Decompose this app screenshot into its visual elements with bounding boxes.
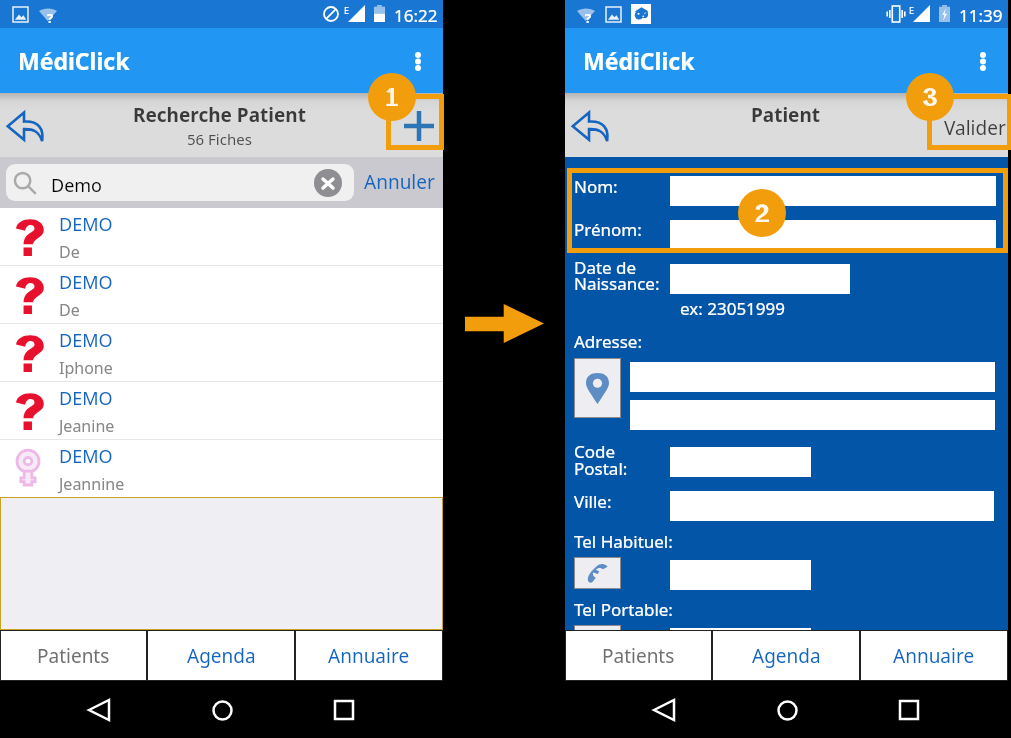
staticText: Iphone	[59, 357, 113, 379]
button[interactable]: DEMO	[0, 208, 443, 266]
button[interactable]: Patients	[1, 631, 146, 680]
button[interactable]: Annuaire	[296, 631, 442, 680]
staticText: Annuler	[364, 169, 435, 195]
staticText: Date de	[574, 256, 637, 279]
staticText: Tel Habituel:	[574, 530, 673, 553]
staticText: DEMO	[59, 444, 113, 469]
staticText: Agenda	[752, 643, 821, 669]
staticText: Demo	[51, 173, 103, 198]
staticText: DEMO	[59, 328, 113, 353]
button[interactable]: DEMO	[0, 382, 443, 440]
staticText: Naissance:	[574, 272, 660, 295]
staticText: 56 Fiches	[187, 129, 252, 149]
staticText: Patients	[602, 643, 675, 669]
button[interactable]	[670, 176, 996, 206]
button[interactable]: Demo	[6, 164, 354, 201]
staticText: DEMO	[59, 212, 113, 237]
staticText: Annuaire	[328, 643, 410, 669]
button[interactable]: Retour	[0, 101, 50, 151]
staticText: Code	[574, 440, 616, 463]
staticText: DEMO	[59, 270, 113, 295]
button[interactable]: Home	[198, 686, 246, 734]
staticText: De	[59, 299, 80, 321]
staticText: MédiClick	[18, 45, 130, 76]
staticText: Patients	[37, 643, 110, 669]
button[interactable]: Appeler	[575, 626, 620, 656]
button[interactable]	[670, 220, 996, 248]
button[interactable]: Back	[640, 686, 688, 734]
button[interactable]: Menu	[394, 37, 442, 85]
staticText: MédiClick	[583, 45, 695, 76]
button[interactable]: Annuler	[360, 167, 439, 197]
button[interactable]	[670, 628, 811, 658]
staticText: DEMO	[59, 386, 113, 411]
staticText: Jeanine	[59, 415, 115, 437]
staticText: 11:39	[959, 4, 1003, 27]
staticText: E	[909, 4, 915, 16]
button[interactable]: Valider	[941, 113, 1009, 143]
staticText: De	[59, 241, 80, 263]
staticText: Postal:	[574, 457, 628, 480]
staticText: Prénom:	[574, 218, 642, 241]
button[interactable]: DEMO	[0, 266, 443, 324]
staticText: Adresse:	[574, 330, 643, 353]
button[interactable]: Menu	[959, 37, 1007, 85]
button[interactable]: DEMO	[0, 324, 443, 382]
button[interactable]: Recents	[885, 686, 933, 734]
staticText: Tel Portable:	[574, 598, 673, 621]
staticText: ?	[585, 9, 592, 24]
staticText: 16:22	[394, 4, 438, 27]
button[interactable]: Agenda	[713, 631, 859, 680]
button[interactable]: Back	[75, 686, 123, 734]
button[interactable]: Recents	[320, 686, 368, 734]
staticText: E	[344, 4, 350, 16]
button[interactable]: Effacer	[314, 169, 342, 197]
staticText: ?	[47, 9, 54, 24]
button[interactable]: Retour	[565, 101, 615, 151]
staticText: Jeannine	[59, 473, 125, 495]
staticText: Nom:	[574, 175, 618, 198]
button[interactable]: Home	[763, 686, 811, 734]
button[interactable]: DEMO	[0, 440, 443, 497]
button[interactable]: Agenda	[148, 631, 294, 680]
button[interactable]: Localiser	[575, 359, 620, 417]
staticText: Ville:	[574, 490, 612, 513]
button[interactable]: Annuaire	[861, 631, 1007, 680]
button[interactable]: Appeler	[575, 558, 620, 588]
staticText: Recherche Patient	[133, 102, 306, 128]
staticText: Annuaire	[893, 643, 975, 669]
staticText: Valider	[944, 115, 1006, 141]
button[interactable]: Patients	[566, 631, 711, 680]
staticText: Patient	[751, 102, 821, 128]
staticText: Agenda	[187, 643, 256, 669]
button[interactable]: Ajouter	[391, 98, 447, 154]
staticText: ex: 23051999	[680, 297, 786, 320]
